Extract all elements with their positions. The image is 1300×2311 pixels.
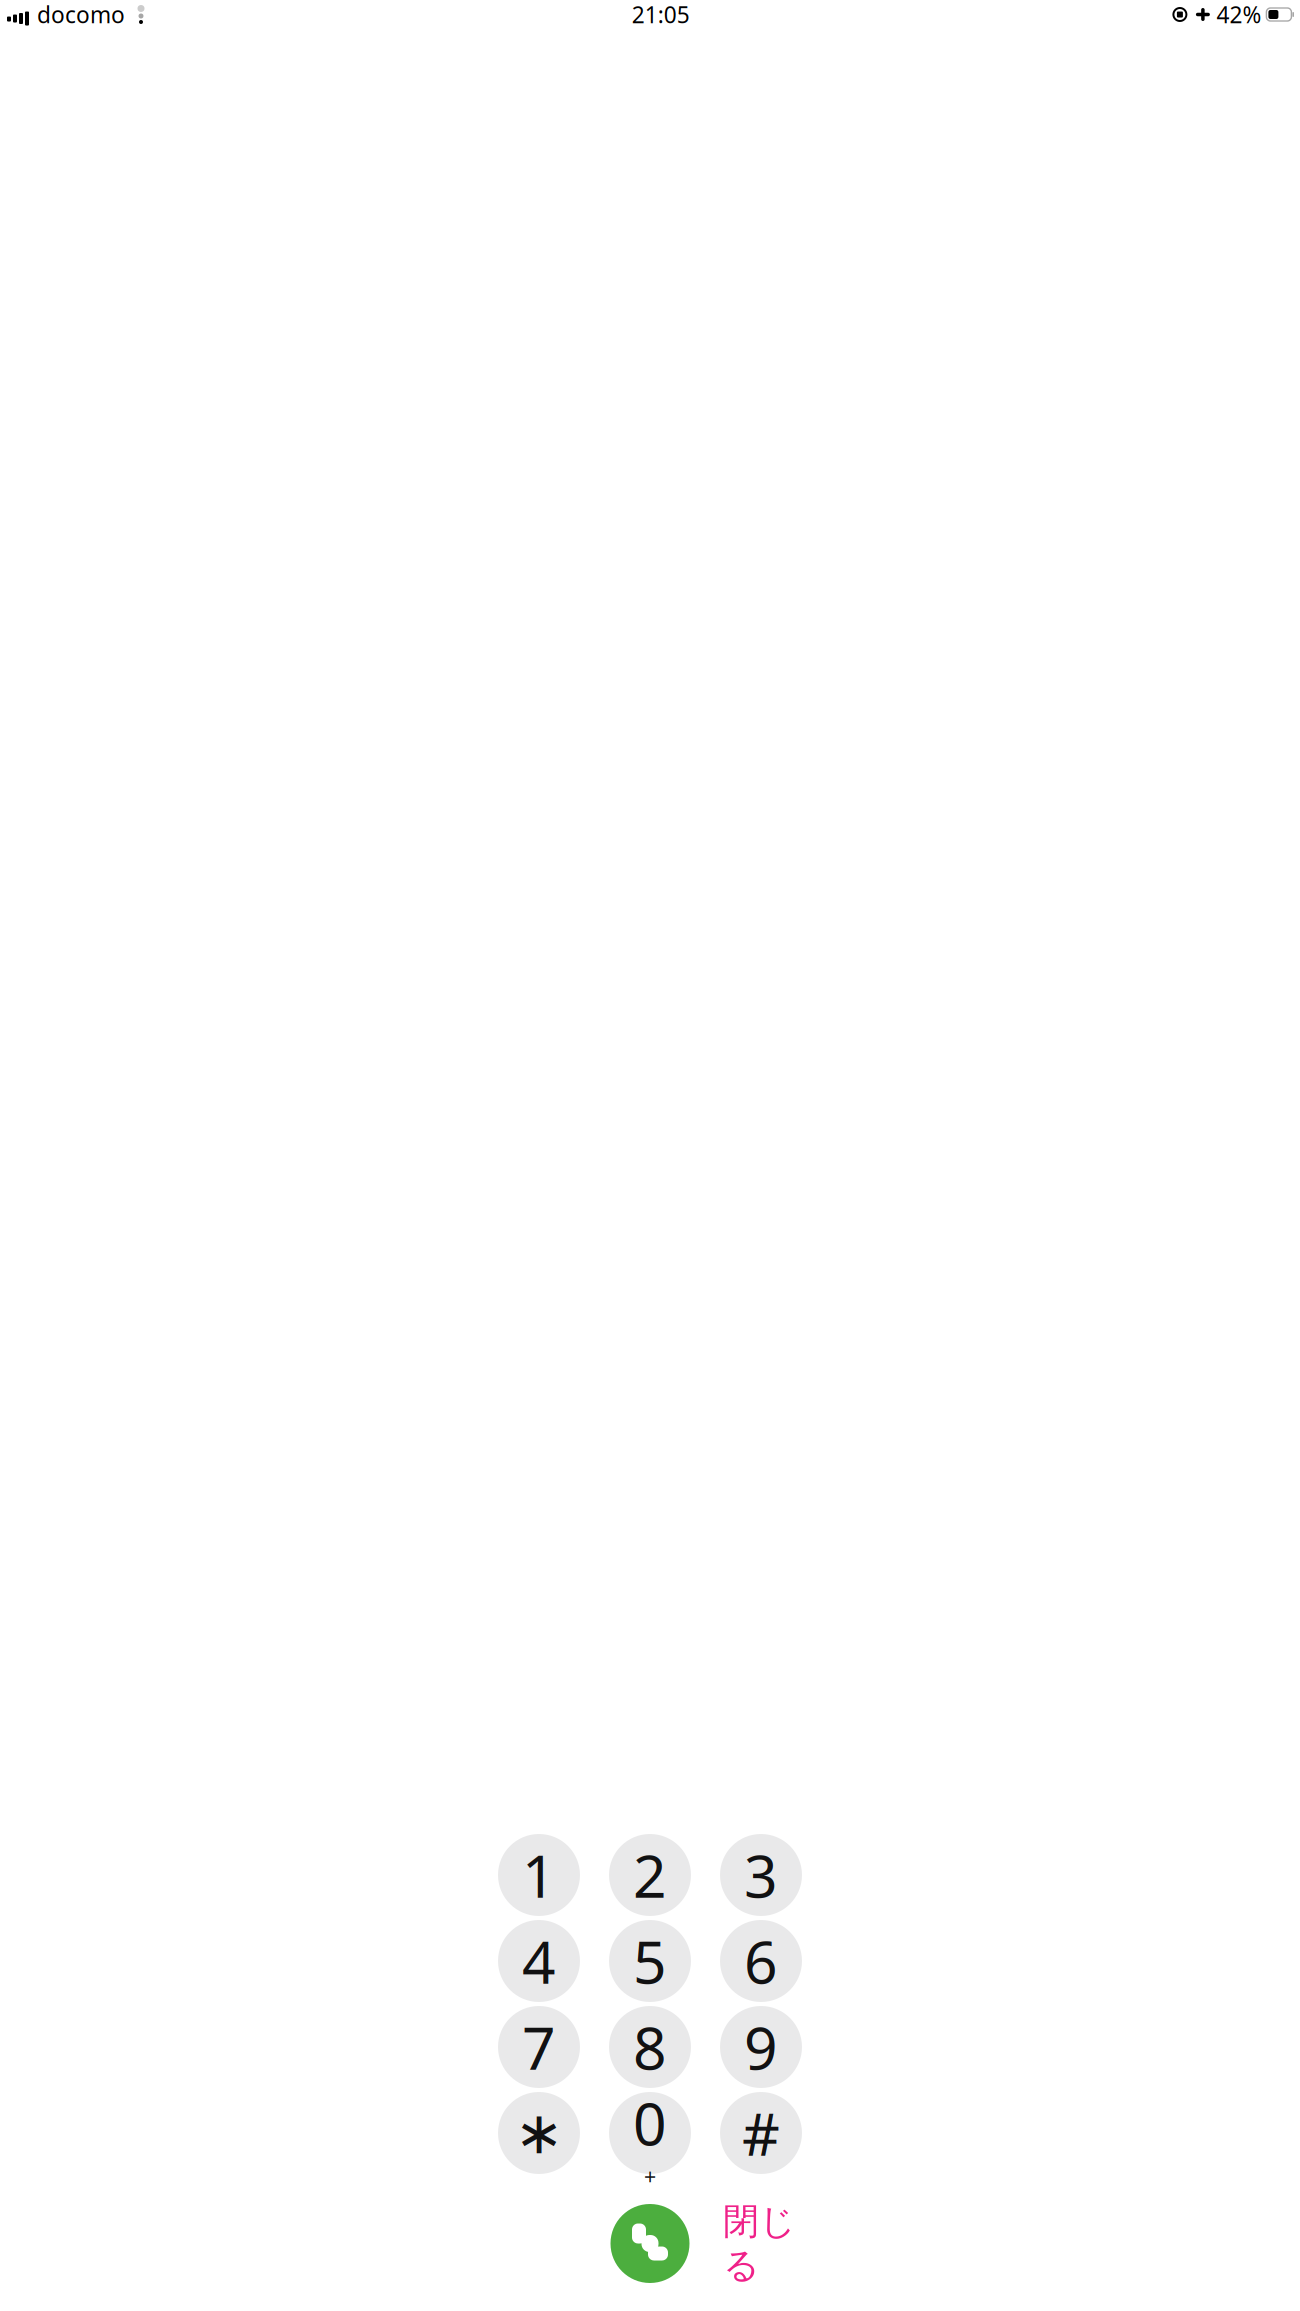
staticText: 8: [633, 2008, 667, 2086]
button[interactable]: #: [720, 2092, 802, 2174]
staticText: 4: [522, 1922, 556, 2000]
staticText: 0: [633, 2084, 667, 2162]
button[interactable]: ∗: [498, 2092, 580, 2174]
staticText: 1: [522, 1836, 556, 1914]
staticText: 21:05: [632, 0, 690, 29]
staticText: 5: [633, 1922, 667, 2000]
button[interactable]: 発信: [610, 2204, 689, 2283]
staticText: +: [644, 2162, 656, 2190]
staticText: docomo: [37, 0, 125, 29]
button[interactable]: 7: [498, 2006, 580, 2088]
staticText: ∗: [514, 2100, 563, 2166]
button[interactable]: 0: [609, 2092, 691, 2174]
button[interactable]: 3: [720, 1834, 802, 1916]
button[interactable]: 8: [609, 2006, 691, 2088]
button[interactable]: 2: [609, 1834, 691, 1916]
button[interactable]: 6: [720, 1920, 802, 2002]
staticText: #: [742, 2094, 780, 2172]
staticText: 42%: [1216, 0, 1261, 29]
button[interactable]: 4: [498, 1920, 580, 2002]
button[interactable]: 閉じる: [718, 2214, 800, 2272]
staticText: 3: [744, 1836, 778, 1914]
staticText: 6: [744, 1922, 778, 2000]
staticText: 9: [744, 2008, 778, 2086]
staticText: 2: [633, 1836, 667, 1914]
staticText: 閉じる: [723, 2199, 796, 2288]
button[interactable]: 5: [609, 1920, 691, 2002]
button[interactable]: 1: [498, 1834, 580, 1916]
button[interactable]: 9: [720, 2006, 802, 2088]
staticText: 7: [522, 2008, 556, 2086]
